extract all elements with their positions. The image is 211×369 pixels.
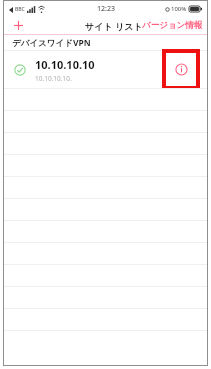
- staticText: 10.10.10.10.: [35, 74, 72, 83]
- staticText: バージョン情報: [142, 20, 203, 31]
- staticText: BBC: [15, 6, 25, 13]
- button[interactable]: 10.10.10.10: [4, 51, 207, 88]
- staticText: 100%: [171, 5, 187, 13]
- button[interactable]: Add site: [4, 17, 32, 34]
- button[interactable]: Details: [175, 63, 188, 76]
- staticText: 12:23: [97, 4, 115, 14]
- staticText: 10.10.10.10: [35, 57, 95, 72]
- staticText: デバイスワイドVPN: [12, 37, 91, 49]
- button[interactable]: バージョン情報: [138, 17, 207, 34]
- staticText: サイト リスト: [85, 20, 143, 32]
